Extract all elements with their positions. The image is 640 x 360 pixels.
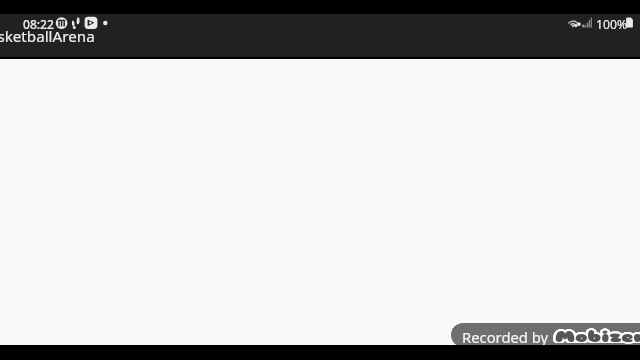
staticText: Mobizen bbox=[554, 327, 640, 345]
other: Status icons bbox=[0, 0, 640, 360]
staticText: BasketballArena bbox=[0, 26, 95, 46]
staticText: Recorded by bbox=[462, 327, 549, 347]
staticText: Mobizen bbox=[553, 327, 640, 345]
staticText: Mobizen bbox=[556, 327, 640, 345]
staticText: Mobizen bbox=[555, 328, 640, 346]
staticText: Mobizen bbox=[553, 328, 640, 346]
button[interactable]: 08:22 bbox=[23, 14, 54, 34]
button[interactable]: Recorded by Mobizen bbox=[451, 323, 640, 347]
staticText: Mobizen bbox=[555, 327, 640, 344]
staticText: Mobizen bbox=[554, 329, 640, 347]
staticText: Mobizen bbox=[557, 329, 640, 347]
staticText: 100% bbox=[596, 16, 628, 33]
button[interactable]: BasketballArena bbox=[0, 26, 95, 46]
button[interactable]: 100% bbox=[596, 14, 628, 34]
staticText: Mobizen bbox=[556, 329, 640, 347]
staticText: Mobizen bbox=[557, 327, 640, 345]
staticText: Mobizen bbox=[557, 328, 640, 346]
staticText: 08:22 bbox=[23, 16, 54, 32]
staticText: Mobizen bbox=[555, 330, 640, 347]
staticText: Mobizen bbox=[555, 327, 640, 344]
staticText: Mobizen bbox=[553, 329, 640, 347]
staticText: Mobizen bbox=[555, 330, 640, 347]
